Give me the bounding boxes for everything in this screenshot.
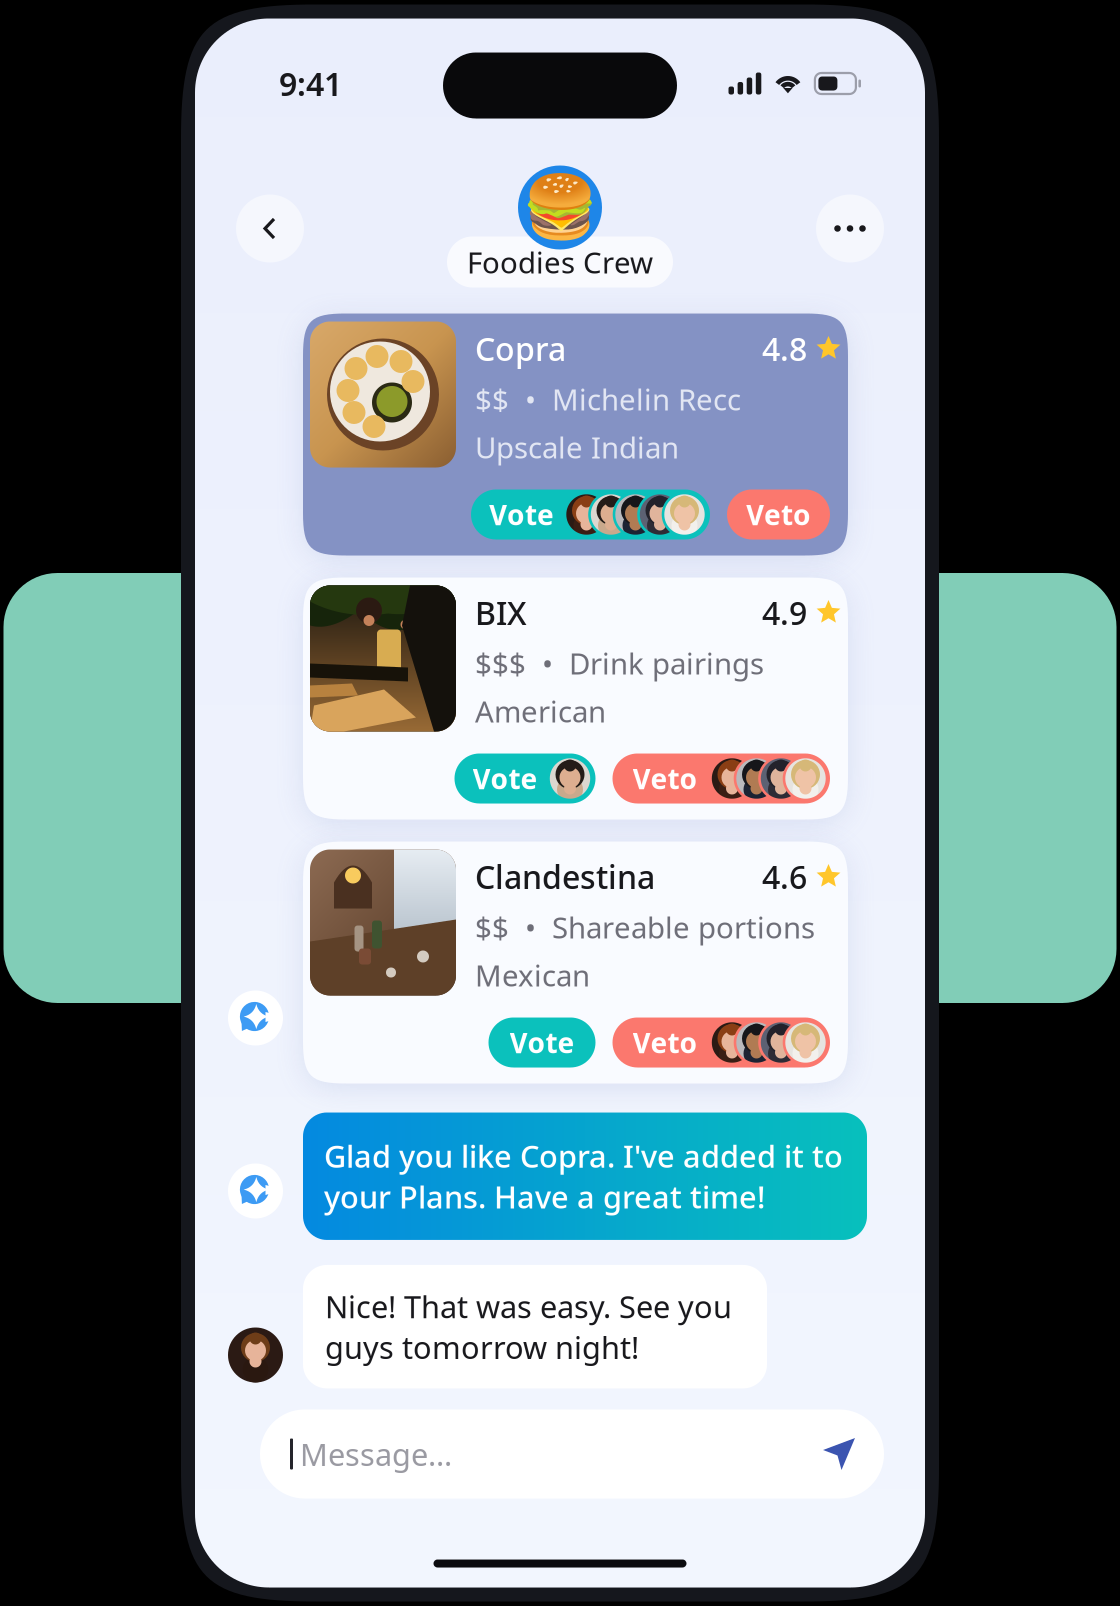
staticText: Vote bbox=[489, 496, 554, 533]
staticText: American bbox=[475, 691, 606, 730]
staticText: Foodies Crew bbox=[467, 242, 653, 281]
staticText: Copra bbox=[475, 327, 566, 370]
staticText: Mexican bbox=[475, 955, 590, 994]
staticText: 4.6 bbox=[762, 855, 807, 898]
button[interactable] bbox=[816, 194, 884, 262]
staticText: Veto bbox=[632, 1024, 697, 1061]
button[interactable]: Veto bbox=[612, 753, 830, 803]
button[interactable]: Vote bbox=[488, 1017, 595, 1067]
staticText: 4.8 bbox=[762, 327, 807, 370]
staticText: Glad you like Copra. I've added it to yo… bbox=[324, 1135, 843, 1217]
staticText: Nice! That was easy. See you guys tomorr… bbox=[325, 1286, 732, 1367]
staticText: Veto bbox=[746, 496, 811, 533]
staticText: 🍔 bbox=[522, 172, 598, 243]
staticText: $$$ • Drink pairings bbox=[475, 643, 764, 682]
staticText: 4.9 bbox=[762, 591, 807, 634]
staticText: Upscale Indian bbox=[475, 427, 679, 466]
button[interactable]: Message... bbox=[260, 1409, 884, 1498]
staticText: $$ • Shareable portions bbox=[475, 907, 815, 946]
button[interactable]: Vote bbox=[454, 753, 595, 803]
staticText: BIX bbox=[475, 591, 527, 634]
button[interactable]: Veto bbox=[727, 489, 830, 539]
staticText: $$ • Michelin Recc bbox=[475, 379, 741, 418]
button[interactable] bbox=[236, 194, 304, 262]
button[interactable]: Veto bbox=[612, 1017, 830, 1067]
staticText: Vote bbox=[509, 1024, 574, 1061]
staticText: Vote bbox=[472, 760, 537, 797]
button[interactable]: Vote bbox=[471, 489, 710, 539]
staticText: Veto bbox=[632, 760, 697, 797]
staticText: Message... bbox=[300, 1434, 452, 1474]
staticText: 9:41 bbox=[279, 62, 342, 105]
staticText: Clandestina bbox=[475, 855, 655, 898]
